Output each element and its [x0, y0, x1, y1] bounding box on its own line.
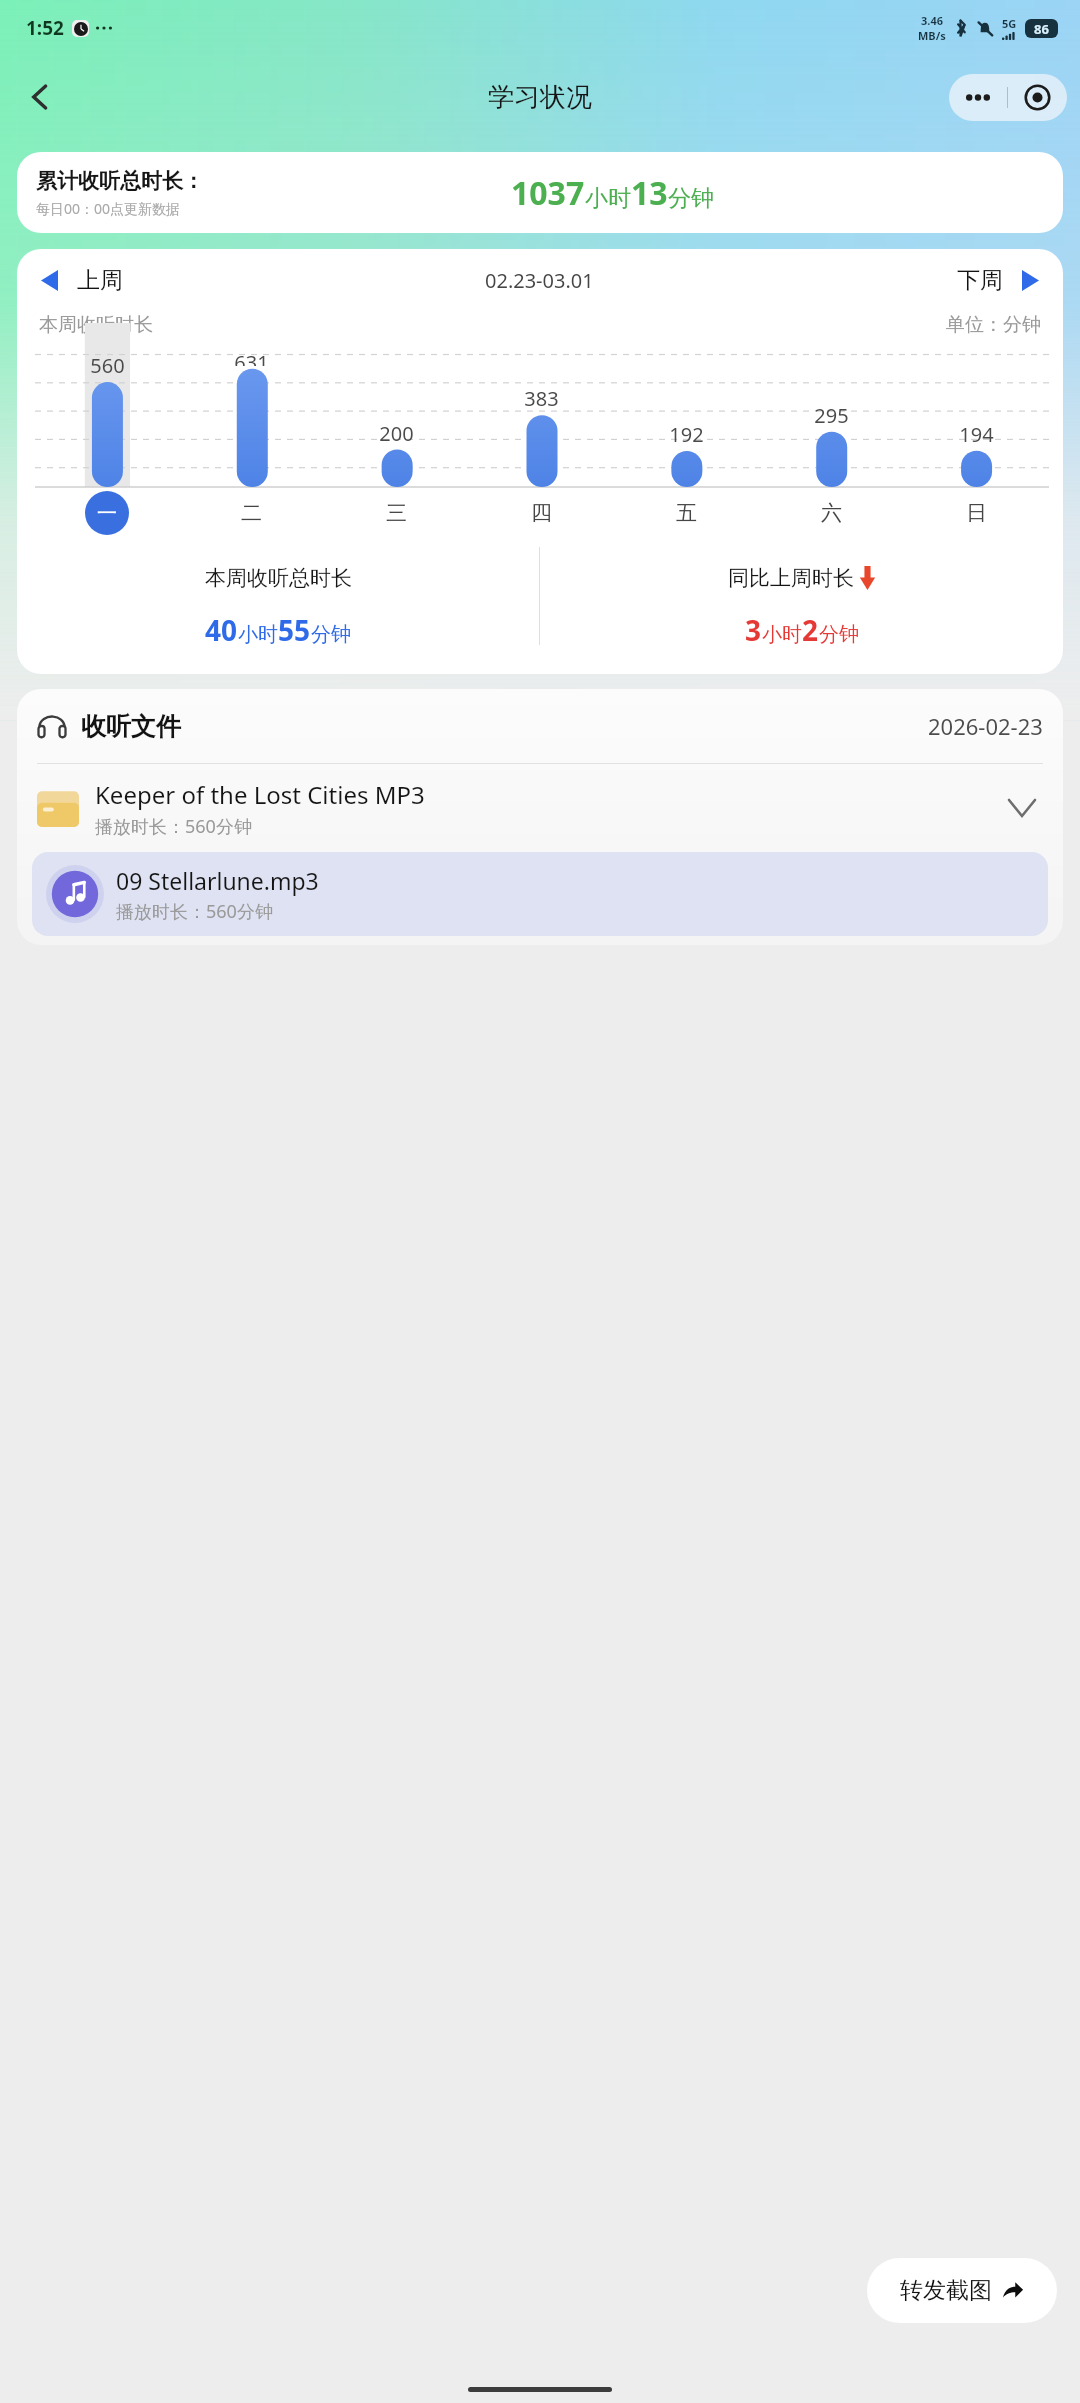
- staticText: 下周: [957, 266, 1003, 295]
- staticText: 13: [631, 171, 668, 215]
- staticText: 2026-02-23: [928, 711, 1043, 741]
- staticText: 同比上周时长: [728, 565, 854, 591]
- staticText: 小时: [585, 184, 631, 213]
- staticText: 小时: [238, 622, 278, 647]
- button[interactable]: More: [949, 74, 1007, 121]
- staticText: 本周收听时长: [39, 313, 153, 337]
- staticText: 55: [278, 611, 311, 649]
- staticText: 192: [669, 421, 704, 448]
- staticText: 累计收听总时长：: [36, 168, 204, 194]
- button[interactable]: Expand: [1001, 787, 1043, 829]
- button[interactable]: Back: [14, 70, 68, 124]
- staticText: 日: [966, 500, 987, 526]
- staticText: 分钟: [668, 184, 714, 213]
- button[interactable]: 二: [179, 487, 324, 539]
- staticText: 上周: [77, 266, 123, 295]
- staticText: 5G: [1002, 16, 1017, 31]
- staticText: 383: [524, 385, 559, 412]
- staticText: 40: [205, 611, 238, 649]
- staticText: 四: [531, 500, 552, 526]
- staticText: 单位：分钟: [946, 313, 1041, 337]
- button[interactable]: 本周收听总时长: [17, 547, 539, 667]
- staticText: 二: [241, 500, 262, 526]
- staticText: 2: [802, 611, 819, 649]
- button[interactable]: 日: [904, 487, 1049, 539]
- staticText: 本周收听总时长: [205, 565, 352, 591]
- staticText: 五: [676, 500, 697, 526]
- button[interactable]: Keeper of the Lost Cities MP3: [17, 764, 1063, 852]
- staticText: 3: [745, 611, 762, 649]
- staticText: 播放时长：560分钟: [116, 899, 273, 924]
- button[interactable]: 下周: [953, 260, 1043, 301]
- button[interactable]: 累计收听总时长：: [17, 152, 1063, 233]
- staticText: 学习状况: [488, 81, 592, 114]
- button[interactable]: 六: [759, 487, 904, 539]
- staticText: 02.23-03.01: [485, 267, 594, 294]
- button[interactable]: 同比上周时长: [540, 547, 1063, 667]
- staticText: 560: [90, 352, 125, 379]
- staticText: Keeper of the Lost Cities MP3: [95, 778, 425, 811]
- staticText: 295: [814, 402, 849, 429]
- button[interactable]: Close: [1008, 74, 1067, 121]
- staticText: 1037: [511, 171, 585, 215]
- staticText: 200: [379, 420, 414, 447]
- button[interactable]: 四: [469, 487, 614, 539]
- button[interactable]: 上周: [37, 260, 127, 301]
- button[interactable]: 转发截图: [867, 2258, 1057, 2323]
- staticText: 每日00：00点更新数据: [36, 199, 181, 218]
- staticText: 09 Stellarlune.mp3: [116, 865, 319, 896]
- staticText: 3.46: [921, 13, 943, 28]
- staticText: 收听文件: [81, 711, 181, 742]
- staticText: 播放时长：560分钟: [95, 814, 252, 839]
- button[interactable]: 五: [614, 487, 759, 539]
- staticText: 分钟: [311, 622, 351, 647]
- button[interactable]: 三: [324, 487, 469, 539]
- staticText: MB/s: [918, 28, 946, 43]
- button[interactable]: 09 Stellarlune.mp3: [32, 852, 1048, 936]
- staticText: 分钟: [819, 622, 859, 647]
- staticText: 六: [821, 500, 842, 526]
- staticText: 1:52: [26, 15, 64, 41]
- staticText: 631: [234, 349, 269, 366]
- staticText: 一: [97, 501, 117, 526]
- staticText: 86: [1034, 20, 1049, 38]
- button[interactable]: 一: [35, 487, 179, 539]
- staticText: 转发截图: [900, 2276, 992, 2305]
- staticText: 194: [959, 421, 994, 448]
- staticText: 三: [386, 500, 407, 526]
- staticText: 小时: [762, 622, 802, 647]
